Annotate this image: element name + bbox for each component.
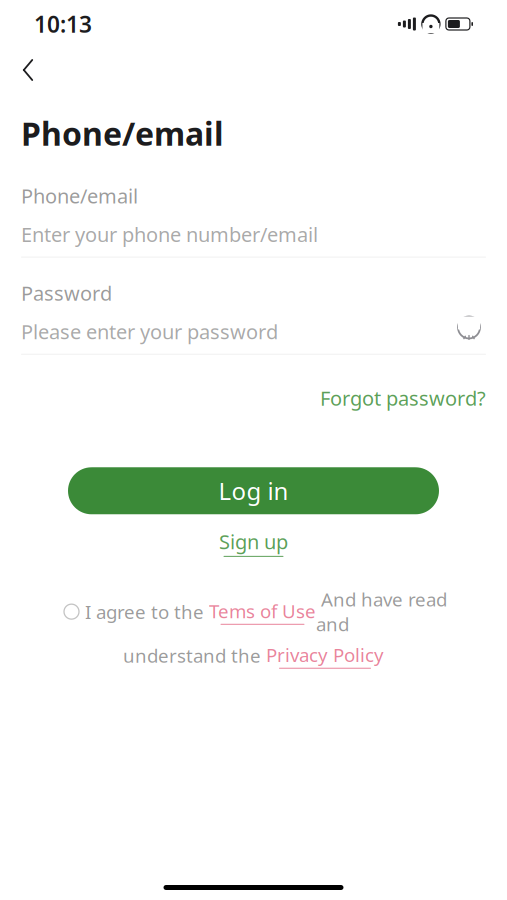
button[interactable]: Forgot password? bbox=[320, 379, 486, 417]
button[interactable]: Show password bbox=[452, 319, 486, 343]
staticText: And have read and bbox=[316, 587, 447, 636]
staticText: understand the bbox=[123, 643, 266, 668]
staticText: Forgot password? bbox=[320, 385, 486, 411]
staticText: Please enter your password bbox=[21, 318, 278, 345]
staticText: Tems of Use bbox=[209, 598, 316, 623]
button[interactable]: Privacy Policy bbox=[266, 642, 384, 669]
button[interactable]: Log in bbox=[68, 467, 439, 514]
staticText: 10:13 bbox=[34, 9, 92, 39]
staticText: Log in bbox=[218, 475, 288, 507]
button[interactable]: Sign up bbox=[219, 524, 288, 561]
button[interactable]: I agree to the terms bbox=[60, 600, 83, 623]
button[interactable]: Tems of Use bbox=[209, 598, 316, 625]
staticText: Sign up bbox=[219, 528, 288, 555]
staticText: Phone/email bbox=[21, 112, 224, 154]
staticText: I agree to the bbox=[85, 599, 209, 624]
staticText: Privacy Policy bbox=[266, 642, 384, 667]
staticText: Phone/email bbox=[21, 182, 138, 209]
staticText: Password bbox=[21, 280, 112, 306]
staticText: Enter your phone number/email bbox=[21, 221, 318, 248]
button[interactable]: Back bbox=[8, 50, 48, 90]
